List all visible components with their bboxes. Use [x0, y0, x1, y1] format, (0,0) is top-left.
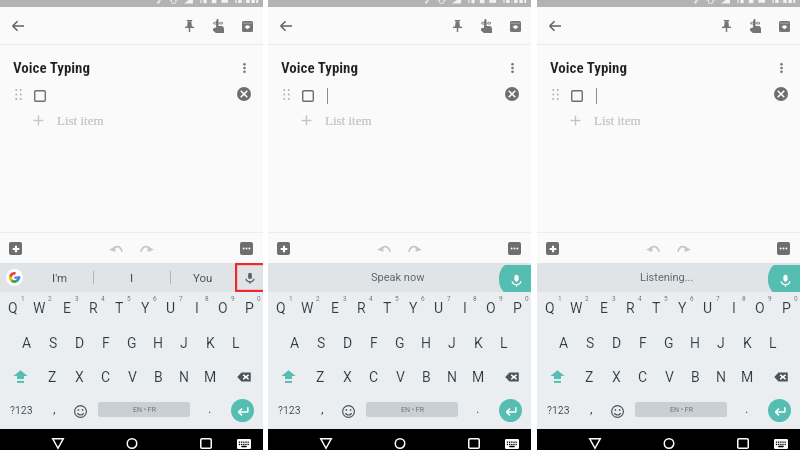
button[interactable]: Enter	[768, 399, 791, 422]
button[interactable]: Pin	[716, 16, 736, 36]
button[interactable]: Backspace	[761, 360, 800, 394]
button[interactable]: .	[198, 394, 222, 429]
button[interactable]: Y	[401, 292, 427, 326]
button[interactable]: Archive	[774, 16, 794, 36]
button[interactable]: L	[492, 326, 518, 360]
button[interactable]: Reminder	[476, 16, 496, 36]
button[interactable]: O	[479, 292, 505, 326]
button[interactable]: F	[94, 326, 120, 360]
button[interactable]: Back	[584, 433, 606, 450]
button[interactable]: Back	[275, 15, 297, 37]
button[interactable]: Back	[544, 15, 566, 37]
button[interactable]: Redo	[675, 239, 693, 257]
button[interactable]: Q	[0, 292, 27, 326]
button[interactable]: .	[735, 394, 759, 429]
button[interactable]: Undo	[107, 239, 125, 257]
button[interactable]: Shift	[268, 360, 308, 394]
button[interactable]: ?123	[270, 394, 308, 429]
button[interactable]: More	[240, 242, 253, 255]
button[interactable]: W	[564, 292, 591, 326]
button[interactable]: F	[631, 326, 657, 360]
button[interactable]: Emoji	[605, 401, 629, 421]
button[interactable]: Archive	[505, 16, 525, 36]
button[interactable]: Z	[40, 360, 67, 394]
button[interactable]: Add	[546, 242, 559, 255]
button[interactable]: M	[735, 360, 761, 394]
button[interactable]: O	[211, 292, 237, 326]
button[interactable]: H	[414, 326, 440, 360]
button[interactable]: B	[146, 360, 172, 394]
button[interactable]: Voice input	[235, 263, 265, 292]
button[interactable]: Pin	[447, 16, 467, 36]
button[interactable]: Recents	[463, 433, 485, 450]
button[interactable]: W	[27, 292, 54, 326]
button[interactable]: More options	[772, 59, 790, 77]
button[interactable]: D	[68, 326, 94, 360]
button[interactable]: Checkbox	[34, 90, 46, 102]
button[interactable]: Backspace	[492, 360, 531, 394]
button[interactable]: A	[282, 326, 309, 360]
button[interactable]: Keyboard	[233, 433, 255, 450]
button[interactable]: Redo	[138, 239, 156, 257]
button[interactable]: I	[94, 263, 170, 292]
button[interactable]: EN • FR	[366, 402, 458, 417]
button[interactable]: Back	[7, 15, 29, 37]
button[interactable]: I'm	[27, 263, 93, 292]
button[interactable]: You	[171, 263, 235, 292]
button[interactable]: I	[185, 292, 211, 326]
button[interactable]: E	[591, 292, 618, 326]
button[interactable]: S	[309, 326, 336, 360]
button[interactable]: ?123	[539, 394, 577, 429]
button[interactable]: EN • FR	[635, 402, 727, 417]
button[interactable]: D	[605, 326, 631, 360]
button[interactable]: Recents	[732, 433, 754, 450]
button[interactable]: ,	[310, 394, 334, 429]
button[interactable]: M	[466, 360, 492, 394]
button[interactable]: O	[748, 292, 774, 326]
button[interactable]: List item	[301, 111, 372, 129]
button[interactable]: Keyboard	[501, 433, 523, 450]
button[interactable]: Add	[277, 242, 290, 255]
button[interactable]: Reminder	[745, 16, 765, 36]
button[interactable]: Back	[47, 433, 69, 450]
button[interactable]: Speak now	[268, 263, 531, 292]
button[interactable]: Home	[121, 433, 143, 450]
button[interactable]: Keyboard	[770, 433, 792, 450]
button[interactable]: V	[657, 360, 683, 394]
button[interactable]: More	[777, 242, 790, 255]
button[interactable]: Archive	[237, 16, 257, 36]
button[interactable]: T	[375, 292, 401, 326]
button[interactable]: P	[237, 292, 263, 326]
button[interactable]: Shift	[537, 360, 577, 394]
button[interactable]: X	[67, 360, 94, 394]
button[interactable]: X	[335, 360, 362, 394]
button[interactable]: More	[508, 242, 521, 255]
button[interactable]: V	[388, 360, 414, 394]
button[interactable]: Undo	[644, 239, 662, 257]
button[interactable]: C	[631, 360, 657, 394]
button[interactable]: B	[683, 360, 709, 394]
button[interactable]: V	[120, 360, 146, 394]
button[interactable]: H	[683, 326, 709, 360]
button[interactable]: R	[81, 292, 107, 326]
button[interactable]: E	[322, 292, 349, 326]
button[interactable]: M	[198, 360, 224, 394]
button[interactable]: J	[440, 326, 466, 360]
button[interactable]: Undo	[375, 239, 393, 257]
button[interactable]: W	[295, 292, 322, 326]
button[interactable]: Home	[658, 433, 680, 450]
button[interactable]: Enter	[231, 399, 254, 422]
button[interactable]: Listening...	[537, 263, 800, 292]
button[interactable]: N	[709, 360, 735, 394]
button[interactable]: J	[709, 326, 735, 360]
button[interactable]: R	[618, 292, 644, 326]
button[interactable]: G	[388, 326, 414, 360]
button[interactable]: Add	[9, 242, 22, 255]
button[interactable]: Google	[6, 269, 23, 286]
button[interactable]: L	[761, 326, 787, 360]
button[interactable]: U	[159, 292, 185, 326]
button[interactable]: T	[644, 292, 670, 326]
button[interactable]: EN • FR	[98, 402, 190, 417]
button[interactable]: Emoji	[336, 401, 360, 421]
button[interactable]: Reminder	[208, 16, 228, 36]
